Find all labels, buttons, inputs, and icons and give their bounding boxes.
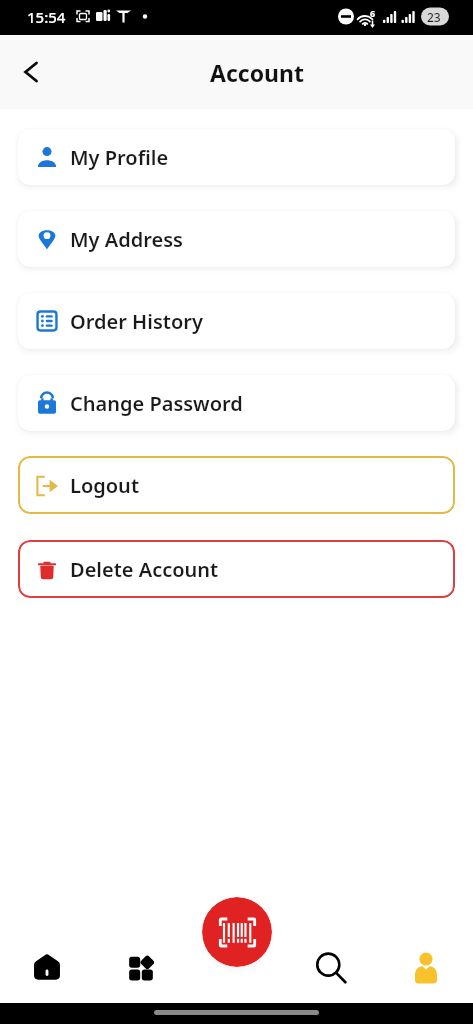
staticText: Logout: [70, 472, 139, 499]
staticText: My Address: [70, 226, 183, 253]
button[interactable]: Order History: [18, 293, 455, 349]
staticText: 15:54: [27, 7, 66, 27]
button[interactable]: My Profile: [18, 129, 455, 185]
button[interactable]: Delete Account: [18, 540, 455, 598]
button[interactable]: Back: [0, 44, 56, 100]
button[interactable]: Categories: [94, 896, 188, 1003]
staticText: Account: [210, 57, 304, 88]
staticText: Delete Account: [70, 556, 219, 583]
staticText: 6: [370, 7, 376, 19]
staticText: Change Password: [70, 390, 243, 417]
button[interactable]: Change Password: [18, 375, 455, 431]
staticText: Order History: [70, 308, 203, 335]
button[interactable]: Search: [283, 896, 378, 1003]
button[interactable]: Account: [378, 896, 473, 1003]
staticText: My Profile: [70, 144, 169, 171]
button[interactable]: Logout: [18, 456, 455, 514]
button[interactable]: Scan barcode: [202, 897, 272, 967]
button[interactable]: Home: [0, 896, 94, 1003]
staticText: 23: [427, 9, 441, 25]
button[interactable]: My Address: [18, 211, 455, 267]
